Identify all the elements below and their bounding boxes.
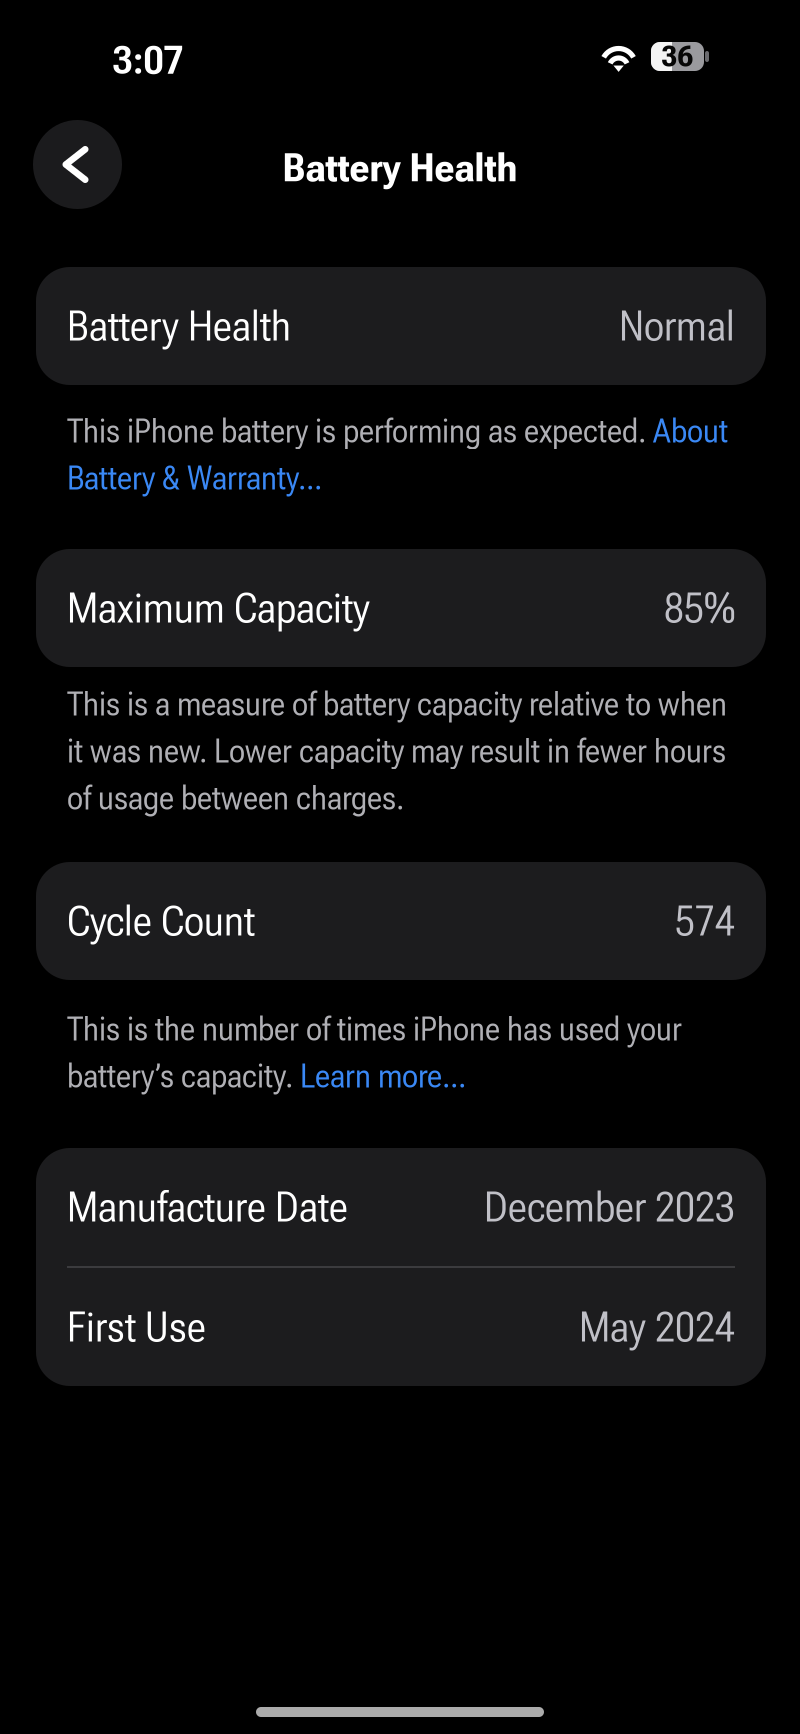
staticText: Battery & Warranty...: [67, 460, 322, 497]
staticText: Normal: [619, 301, 735, 351]
staticText: 574: [675, 896, 735, 946]
staticText: Maximum Capacity: [67, 583, 370, 633]
staticText: December 2023: [484, 1182, 735, 1232]
staticText: Battery Health: [282, 145, 517, 191]
staticText: This iPhone battery is performing as exp…: [67, 413, 653, 450]
staticText: Cycle Count: [67, 896, 255, 946]
staticText: 36: [661, 39, 693, 74]
staticText: Manufacture Date: [67, 1182, 348, 1232]
staticText: Battery Health: [67, 301, 291, 351]
staticText: 85%: [664, 583, 735, 633]
staticText: About: [653, 413, 728, 450]
staticText: battery’s capacity.: [67, 1058, 300, 1095]
staticText: it was new. Lower capacity may result in…: [67, 733, 726, 770]
staticText: May 2024: [579, 1302, 735, 1352]
staticText: of usage between charges.: [67, 780, 404, 817]
button[interactable]: Battery Health: [36, 267, 766, 385]
staticText: First Use: [67, 1302, 206, 1352]
button[interactable]: Back: [33, 120, 122, 209]
staticText: This is a measure of battery capacity re…: [67, 686, 727, 723]
staticText: 3:07: [112, 37, 183, 83]
staticText: This is the number of times iPhone has u…: [67, 1011, 682, 1048]
staticText: Learn more...: [300, 1058, 466, 1095]
